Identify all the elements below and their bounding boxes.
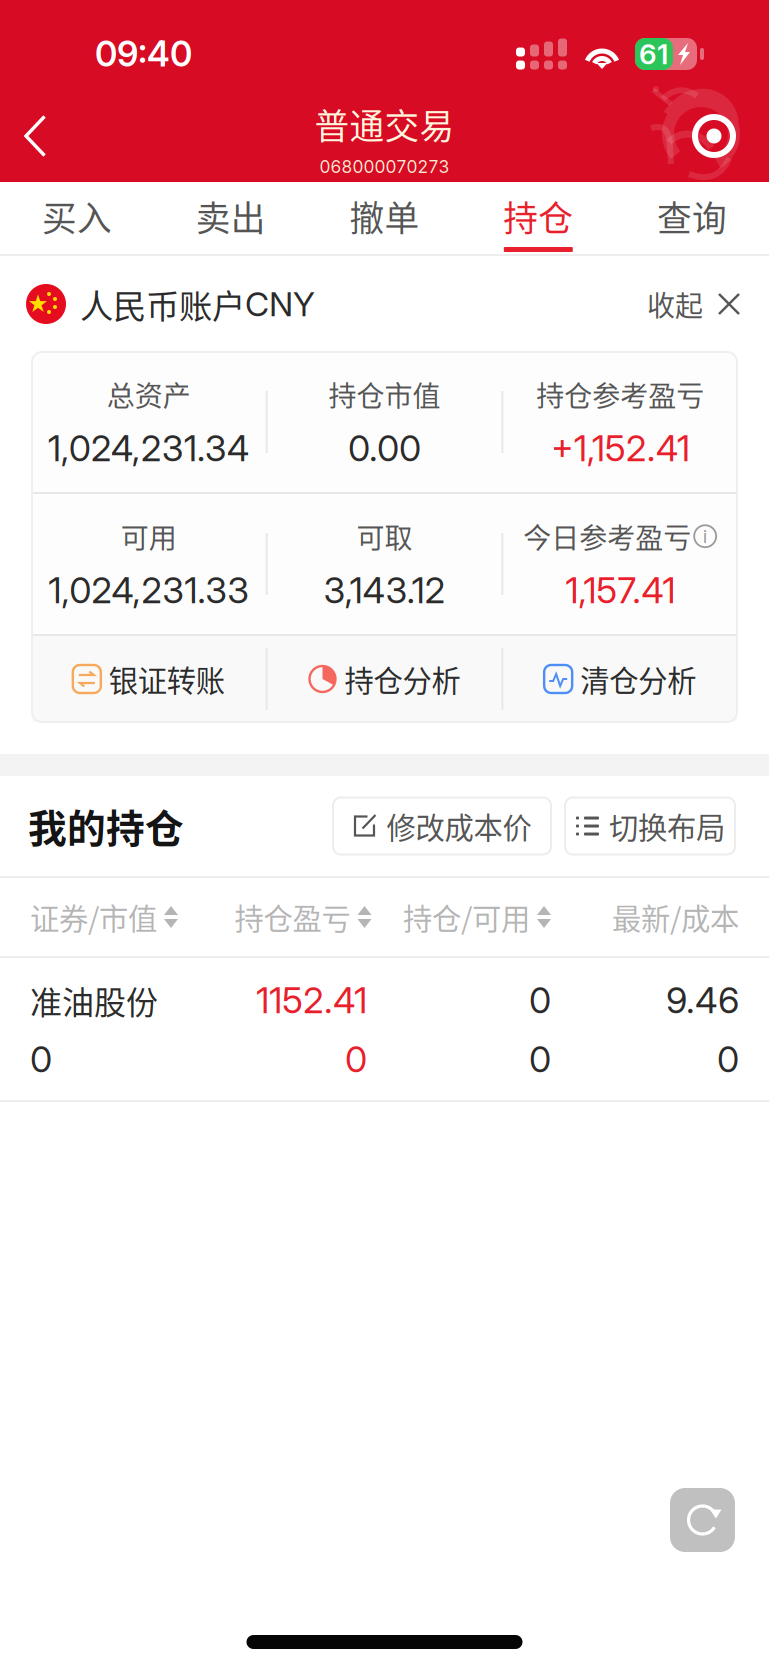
staticText: 1,024,231.34 xyxy=(48,426,250,470)
button[interactable]: 收起 xyxy=(625,270,741,338)
button[interactable]: 撤单 xyxy=(308,182,461,254)
button[interactable]: 查询 xyxy=(615,182,769,254)
button[interactable]: 清仓分析 xyxy=(503,636,737,722)
button[interactable]: 持仓/可用 xyxy=(367,878,551,956)
button[interactable]: 买入 xyxy=(0,182,154,254)
staticText: 0 xyxy=(529,1037,551,1081)
staticText: 切换布局 xyxy=(609,805,725,847)
button[interactable]: 持仓分析 xyxy=(268,636,501,722)
staticText: 人民币账户 xyxy=(80,280,245,328)
staticText: 我的持仓 xyxy=(28,798,184,854)
staticText: 买入 xyxy=(42,191,112,241)
staticText: 持仓分析 xyxy=(344,658,460,700)
staticText: CNY xyxy=(245,284,315,324)
staticText: 查询 xyxy=(657,191,727,241)
button[interactable]: 返回 xyxy=(0,100,74,179)
staticText: 总资产 xyxy=(107,374,191,414)
staticText: 0 xyxy=(30,1037,52,1081)
button[interactable]: 持仓盈亏 xyxy=(232,878,367,956)
staticText: 0 xyxy=(529,978,551,1022)
staticText: 清仓分析 xyxy=(580,658,696,700)
staticText: 最新/成本 xyxy=(612,896,739,938)
staticText: +1,152.41 xyxy=(551,426,690,470)
staticText: 0.00 xyxy=(348,426,421,470)
button[interactable]: 刷新 xyxy=(670,1488,735,1552)
staticText: i xyxy=(703,525,708,547)
button[interactable]: 持仓 xyxy=(461,182,615,254)
button[interactable]: 修改成本价 xyxy=(333,797,551,854)
staticText: 准油股份 xyxy=(30,977,158,1023)
staticText: 今日参考盈亏 xyxy=(523,516,691,556)
button[interactable]: 准油股份 xyxy=(0,958,769,1100)
staticText: 09:40 xyxy=(95,33,192,75)
staticText: 银证转账 xyxy=(109,658,225,700)
button[interactable]: 卖出 xyxy=(154,182,308,254)
staticText: 1,024,231.33 xyxy=(48,568,249,612)
staticText: 撤单 xyxy=(349,191,419,241)
staticText: 可用 xyxy=(121,516,177,556)
staticText: 持仓参考盈亏 xyxy=(536,374,704,414)
staticText: 持仓市值 xyxy=(328,374,440,414)
staticText: 1,157.41 xyxy=(565,568,675,612)
staticText: 可取 xyxy=(356,516,412,556)
staticText: 持仓盈亏 xyxy=(234,896,350,938)
staticText: 0 xyxy=(717,1037,739,1081)
staticText: 卖出 xyxy=(196,191,266,241)
staticText: 收起 xyxy=(647,284,703,324)
staticText: 修改成本价 xyxy=(386,805,531,847)
button[interactable]: 最新/成本 xyxy=(551,878,739,956)
button[interactable]: 证券/市值 xyxy=(30,878,232,956)
staticText: 61 xyxy=(639,37,668,71)
staticText: 持仓/可用 xyxy=(403,896,530,938)
staticText: 1152.41 xyxy=(256,978,367,1022)
button[interactable]: 语音助手 xyxy=(683,105,769,175)
staticText: 持仓 xyxy=(503,191,573,241)
button[interactable]: 切换布局 xyxy=(565,797,735,854)
staticText: 3,143.12 xyxy=(323,568,445,612)
button[interactable]: 银证转账 xyxy=(32,636,266,722)
staticText: 普通交易 xyxy=(314,99,454,149)
staticText: 0 xyxy=(345,1037,367,1081)
staticText: 证券/市值 xyxy=(30,896,157,938)
staticText: 068000070273 xyxy=(319,156,449,177)
staticText: 9.46 xyxy=(666,978,739,1022)
